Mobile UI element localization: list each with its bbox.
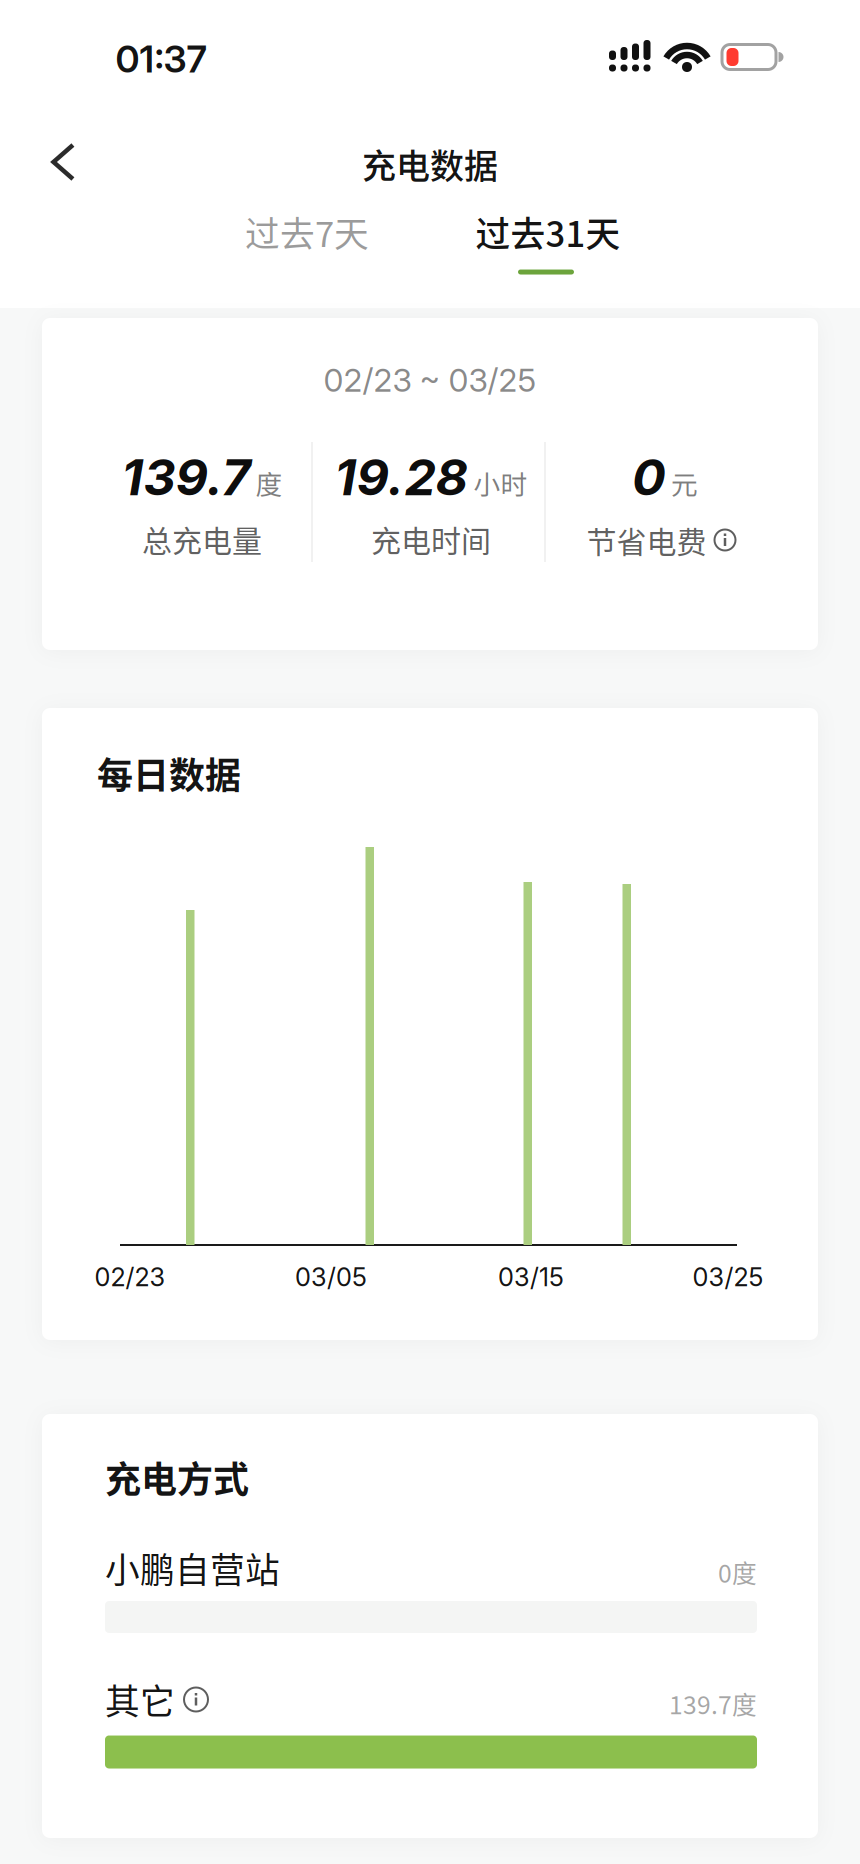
staticText: 节省电费 bbox=[586, 518, 706, 562]
staticText: 充电时间 bbox=[371, 517, 491, 561]
staticText: 度 bbox=[255, 464, 282, 502]
staticText: 02/23 ~ 03/25 bbox=[323, 361, 536, 399]
staticText: 03/15 bbox=[498, 1262, 564, 1292]
button[interactable] bbox=[23, 122, 103, 202]
staticText: 每日数据 bbox=[97, 747, 241, 799]
staticText: 其它 bbox=[105, 1674, 175, 1725]
button[interactable]: 其它 bbox=[105, 1680, 757, 1785]
staticText: 03/25 bbox=[692, 1262, 763, 1292]
staticText: 过去31天 bbox=[475, 207, 620, 257]
staticText: 元 bbox=[671, 464, 698, 502]
staticText: 03/05 bbox=[295, 1262, 367, 1292]
staticText: 总充电量 bbox=[142, 517, 262, 561]
staticText: 19.28 bbox=[334, 447, 468, 507]
staticText: 02/23 bbox=[94, 1262, 165, 1292]
staticText: 充电方式 bbox=[105, 1451, 249, 1503]
staticText: 小时 bbox=[473, 464, 527, 502]
staticText: 充电数据 bbox=[362, 139, 498, 189]
staticText: 0度 bbox=[718, 1554, 757, 1590]
button[interactable]: 小鹏自营站 bbox=[105, 1549, 757, 1649]
staticText: 01:37 bbox=[115, 36, 206, 82]
staticText: 139.7度 bbox=[669, 1686, 757, 1721]
button[interactable]: 过去31天 bbox=[448, 205, 648, 275]
staticText: 0 bbox=[632, 447, 666, 507]
staticText: 139.7 bbox=[121, 447, 250, 507]
button[interactable]: 节省电费 bbox=[586, 518, 735, 562]
button[interactable]: 过去7天 bbox=[207, 197, 407, 267]
staticText: 小鹏自营站 bbox=[105, 1543, 280, 1593]
staticText: 过去7天 bbox=[245, 207, 369, 257]
